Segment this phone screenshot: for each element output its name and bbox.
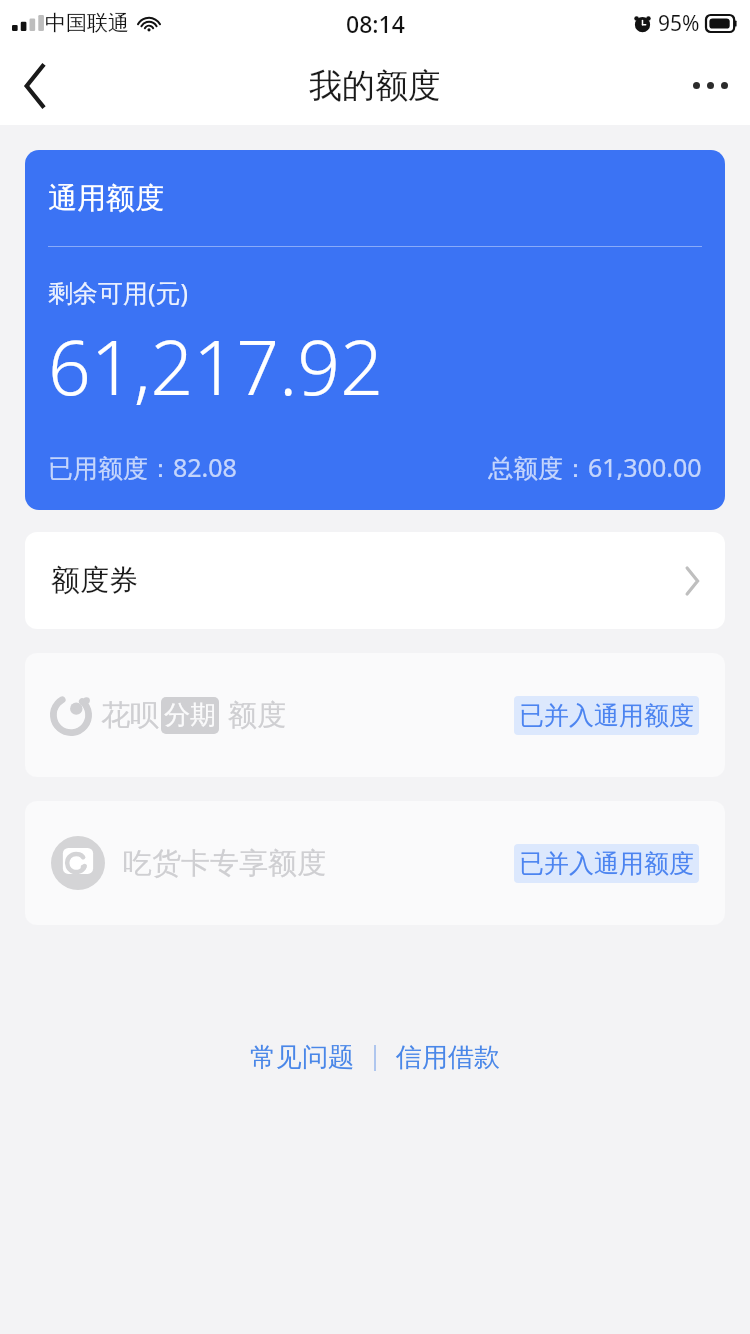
staticText: 花呗: [101, 697, 159, 734]
button[interactable]: Back: [0, 51, 70, 121]
button[interactable]: 额度券: [25, 532, 725, 629]
staticText: 剩余可用(元): [48, 275, 189, 309]
staticText: 已并入通用额度: [519, 700, 694, 731]
staticText: 08:14: [346, 8, 405, 39]
staticText: 信用借款: [396, 1041, 500, 1074]
staticText: 已用额度：82.08: [48, 450, 237, 484]
staticText: 额度券: [51, 562, 138, 599]
staticText: 分期: [164, 699, 216, 732]
staticText: 95%: [658, 9, 700, 38]
button[interactable]: 通用额度: [25, 150, 725, 510]
staticText: 中国联通: [45, 10, 129, 36]
button[interactable]: 吃货卡专享额度: [25, 801, 725, 925]
button[interactable]: 信用借款: [390, 1035, 506, 1080]
staticText: 通用额度: [48, 180, 164, 217]
staticText: 常见问题: [250, 1041, 354, 1074]
staticText: 吃货卡专享额度: [123, 845, 326, 882]
button[interactable]: More options: [670, 46, 750, 125]
staticText: 总额度：61,300.00: [488, 450, 702, 484]
staticText: 61,217.92: [48, 315, 383, 417]
staticText: 额度: [228, 697, 286, 734]
staticText: 已并入通用额度: [519, 848, 694, 879]
staticText: 我的额度: [309, 65, 441, 107]
button[interactable]: 花呗: [25, 653, 725, 777]
button[interactable]: 常见问题: [244, 1035, 360, 1080]
